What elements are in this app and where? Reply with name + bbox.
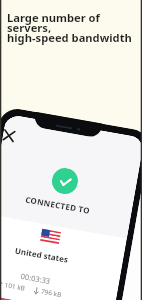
- staticText: 796 kB: [39, 286, 63, 299]
- button[interactable]: Close: [1, 126, 19, 146]
- staticText: Large number of servers, high-speed band…: [7, 10, 132, 45]
- staticText: 101 kB: [2, 280, 26, 293]
- staticText: United states: [14, 245, 69, 265]
- button[interactable]: Disconnect: [0, 296, 91, 300]
- staticText: CONNECTED TO: [24, 193, 91, 216]
- staticText: 00:03:33: [20, 271, 51, 286]
